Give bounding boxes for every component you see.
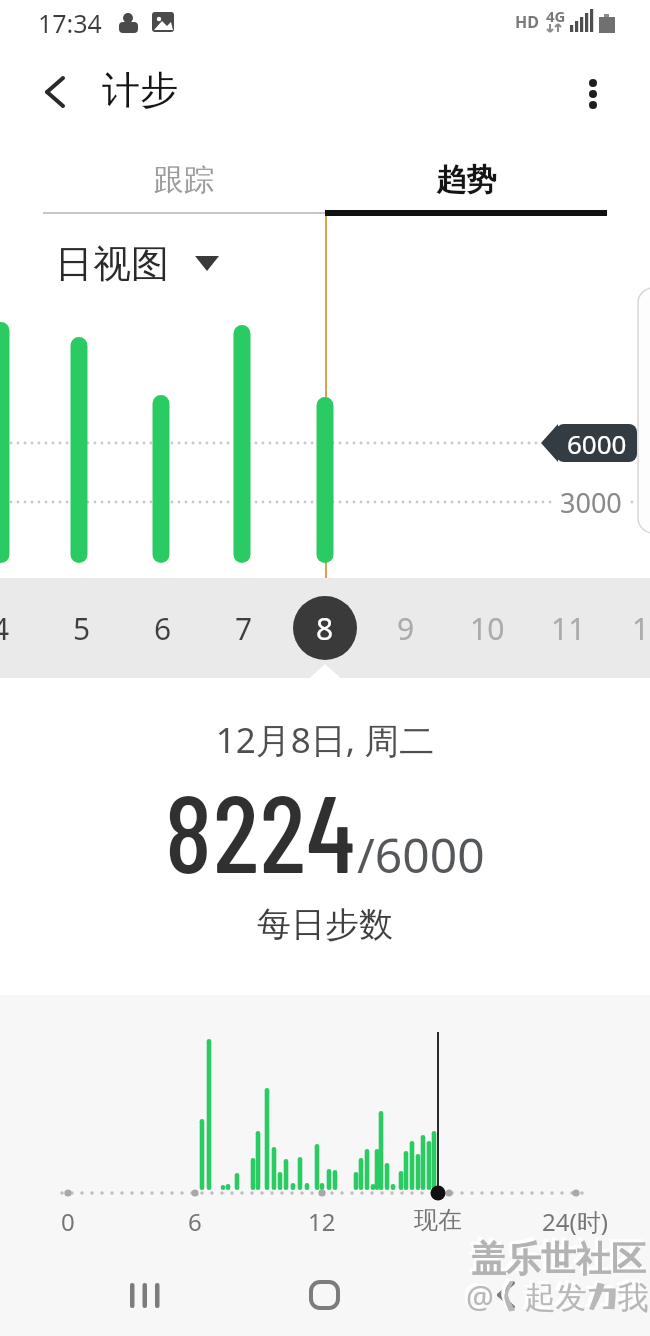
staticText: 每日步数 [0, 903, 650, 946]
button[interactable]: 4 [0, 578, 41, 678]
staticText: 现在 [414, 1205, 462, 1235]
staticText: 6000 [567, 426, 627, 461]
button[interactable]: 趋势 [325, 150, 607, 210]
button[interactable]: 9 [366, 578, 446, 678]
staticText: 17:34 [38, 6, 102, 40]
staticText: 计步 [102, 66, 178, 114]
button[interactable]: 12 [609, 578, 650, 678]
button[interactable] [30, 66, 78, 118]
staticText: 7 [235, 608, 253, 649]
staticText: HD [515, 11, 539, 33]
staticText: @〱起发力我 [466, 1272, 649, 1317]
staticText: 4G [546, 6, 566, 26]
staticText: @〱起发力我 [463, 1269, 646, 1314]
staticText: 3000 [560, 484, 622, 520]
staticText: 24(时) [542, 1205, 608, 1238]
staticText: 6 [154, 608, 172, 649]
staticText: 5 [73, 608, 91, 649]
staticText: 6 [188, 1205, 202, 1238]
button[interactable]: 10 [447, 578, 527, 678]
button[interactable]: 6 [123, 578, 203, 678]
staticText: 10 [470, 608, 505, 649]
staticText: 9 [397, 608, 415, 649]
button[interactable]: 5 [42, 578, 122, 678]
button[interactable]: 日视图 [55, 240, 203, 288]
staticText: 11 [551, 608, 586, 649]
button[interactable]: 8 [285, 578, 365, 678]
staticText: 12 [308, 1205, 336, 1238]
staticText: 盖乐世社区 [471, 1237, 646, 1281]
button[interactable]: 11 [528, 578, 608, 678]
button[interactable]: 跟踪 [43, 150, 325, 210]
staticText: 8224 [165, 764, 357, 895]
button[interactable] [568, 62, 618, 118]
staticText: 12 [632, 608, 650, 649]
staticText: /6000 [357, 822, 485, 887]
staticText: 12月8日, 周二 [0, 716, 650, 764]
button[interactable]: 7 [204, 578, 284, 678]
staticText: 日视图 [55, 240, 169, 288]
staticText: 4 [0, 608, 10, 649]
staticText: 0 [61, 1205, 75, 1238]
staticText: 8 [316, 608, 334, 649]
staticText: 盖乐世社区 [468, 1234, 643, 1278]
staticText: 趋势 [436, 161, 496, 199]
staticText: 跟踪 [154, 161, 214, 199]
